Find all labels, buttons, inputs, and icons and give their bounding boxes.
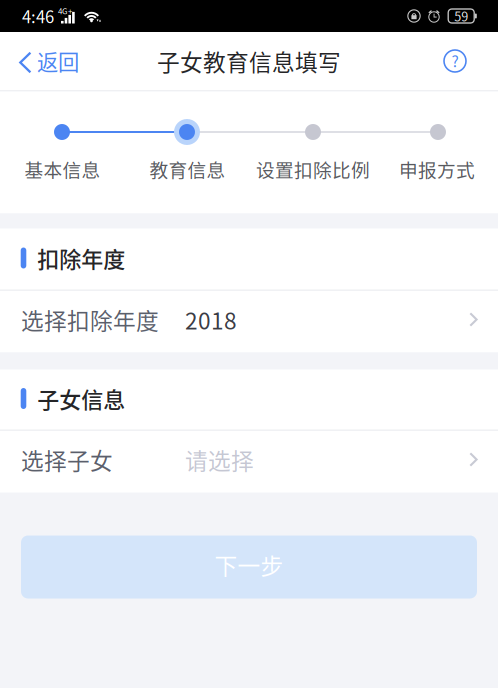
button[interactable]: 选择扣除年度	[0, 289, 498, 352]
staticText: 设置扣除比例	[256, 155, 370, 182]
staticText: 基本信息	[24, 155, 100, 182]
button[interactable]: 返回	[0, 32, 95, 90]
staticText: 教育信息	[149, 155, 225, 182]
staticText: 2018	[185, 303, 237, 336]
staticText: 申报方式	[399, 155, 475, 182]
staticText: 扣除年度	[37, 242, 125, 274]
staticText: 选择扣除年度	[21, 303, 159, 336]
staticText: 下一步	[214, 548, 283, 581]
button[interactable]: 帮助	[427, 32, 498, 90]
staticText: 59	[454, 7, 468, 25]
staticText: 4:46	[22, 4, 54, 28]
staticText: 选择子女	[21, 443, 113, 476]
staticText: 子女信息	[37, 383, 125, 414]
staticText: 4G+	[58, 5, 72, 16]
staticText: 返回	[37, 46, 79, 76]
staticText: ?	[451, 49, 458, 72]
staticText: 请选择	[185, 443, 254, 476]
staticText: 子女教育信息填写	[157, 45, 341, 77]
button[interactable]: 下一步	[21, 535, 477, 598]
button[interactable]: 选择子女	[0, 429, 498, 492]
